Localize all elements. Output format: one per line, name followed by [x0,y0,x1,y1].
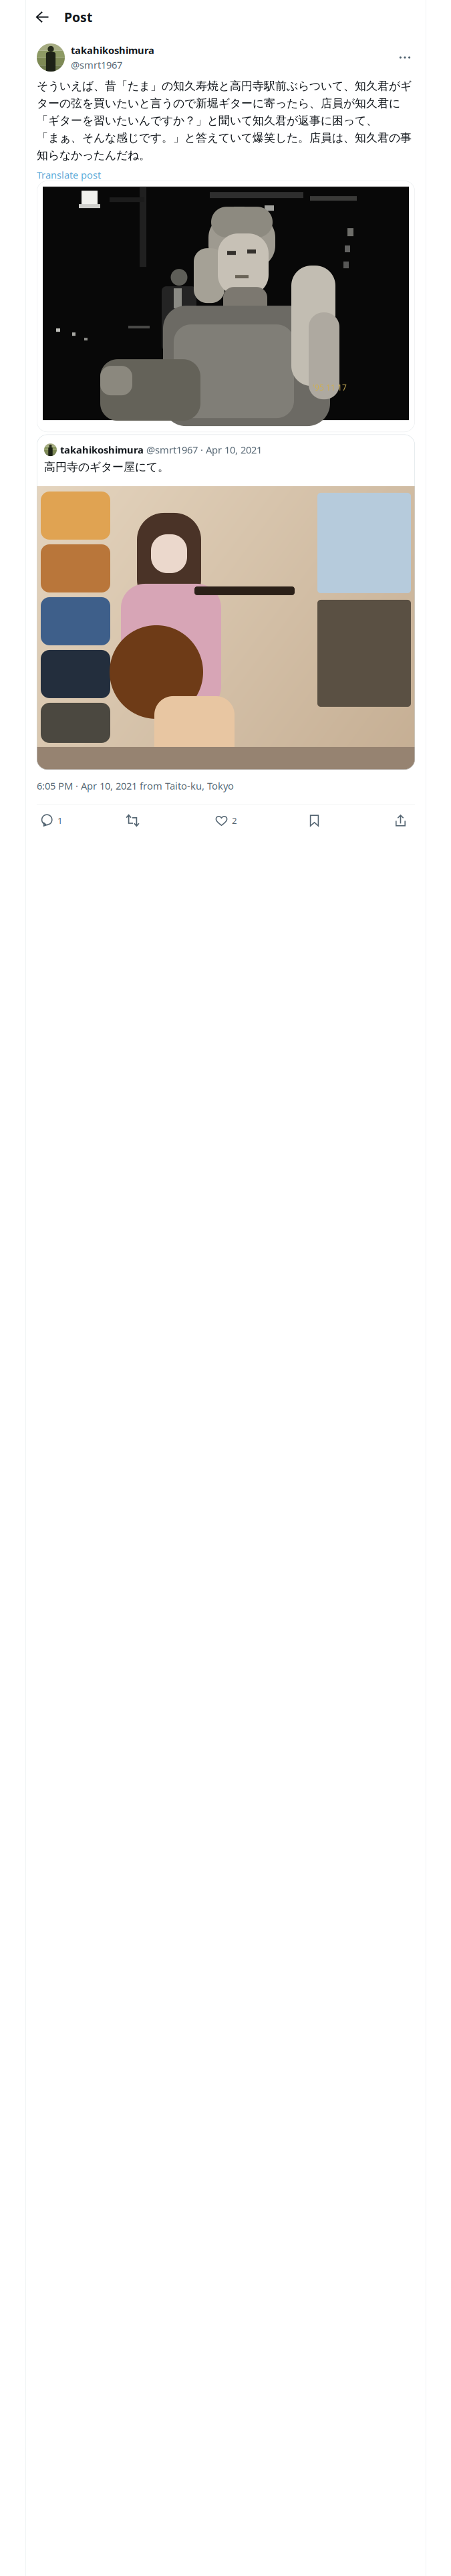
staticText: 高円寺のギター屋にて。 [44,460,169,474]
button[interactable]: More [395,47,415,68]
button[interactable]: Share [394,810,415,831]
button[interactable]: takahikoshimura [37,434,415,770]
button[interactable]: Translate post [37,162,101,183]
staticText: そういえば、昔「たま」の知久寿焼と高円寺駅前ぶらついて、知久君がギターの弦を買い… [37,79,412,162]
button[interactable]: Like [214,810,306,831]
button[interactable]: Bookmark [306,810,373,831]
button[interactable]: Image [37,181,415,432]
staticText: @smrt1967 · Apr 10, 2021 [144,443,262,456]
staticText: 6:05 PM · Apr 10, 2021 from Taito-ku, To… [37,779,234,792]
button[interactable]: Reply [37,810,124,831]
staticText: Post [64,8,92,26]
staticText: @smrt1967 [71,58,122,72]
button[interactable]: Back [31,6,53,28]
staticText: '95 11 17 [313,382,347,393]
staticText: takahikoshimura [71,43,154,57]
staticText: 2 [232,814,237,827]
staticText: Translate post [37,168,101,182]
staticText: 1 [57,814,63,827]
button[interactable]: Repost [124,810,214,831]
staticText: takahikoshimura [60,443,144,456]
